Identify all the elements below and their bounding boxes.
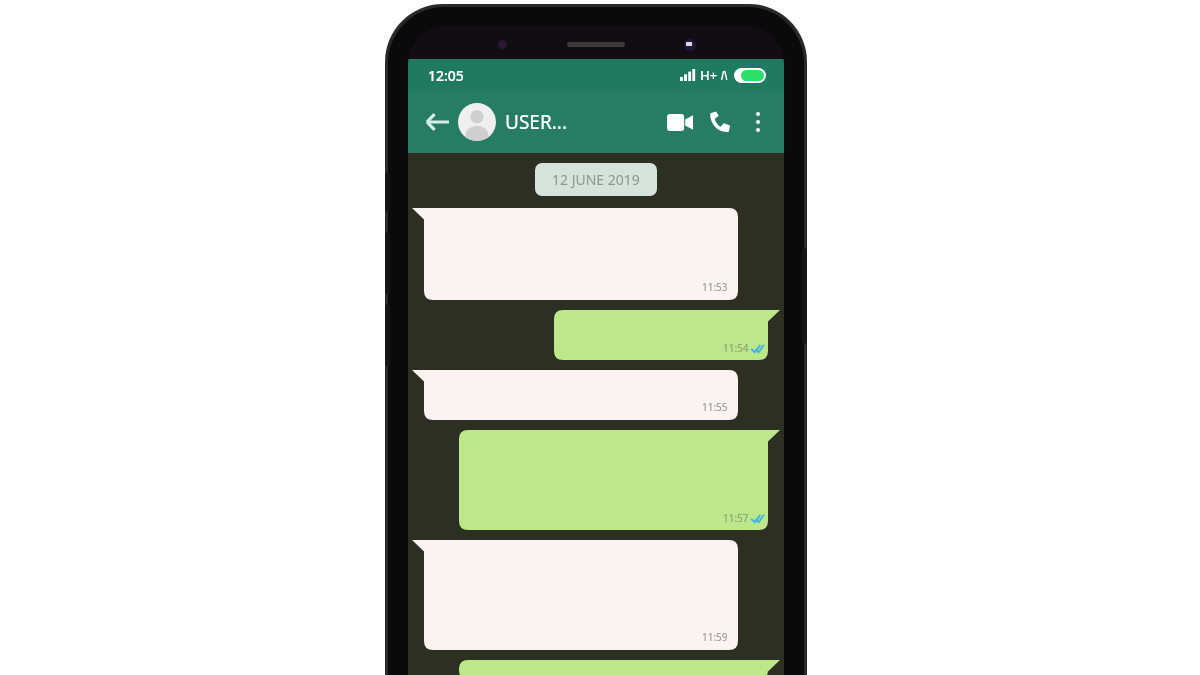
button[interactable]: USER... <box>505 109 660 135</box>
button[interactable]: Video call <box>660 102 700 142</box>
button[interactable]: 11:57 <box>459 430 780 530</box>
staticText: 12:05 <box>428 66 464 85</box>
button[interactable]: Call <box>700 102 740 142</box>
staticText: 11:57 <box>723 511 749 525</box>
staticText: USER... <box>505 109 567 135</box>
button[interactable]: Back <box>418 103 456 141</box>
button[interactable]: 11:53 <box>412 208 738 300</box>
button[interactable] <box>459 660 780 675</box>
button[interactable]: 11:54 <box>554 310 780 360</box>
button[interactable]: 11:55 <box>412 370 738 420</box>
button[interactable]: 11:59 <box>412 540 738 650</box>
staticText: H+ <box>700 66 718 84</box>
staticText: 11:55 <box>702 400 728 414</box>
button[interactable]: More options <box>740 104 776 140</box>
button[interactable]: 12 JUNE 2019 <box>535 163 657 196</box>
button[interactable]: Contact photo <box>458 103 496 141</box>
staticText: 12 JUNE 2019 <box>552 170 640 189</box>
staticText: 11:53 <box>702 280 728 294</box>
staticText: 11:54 <box>723 341 749 355</box>
staticText: 11:59 <box>702 630 728 644</box>
